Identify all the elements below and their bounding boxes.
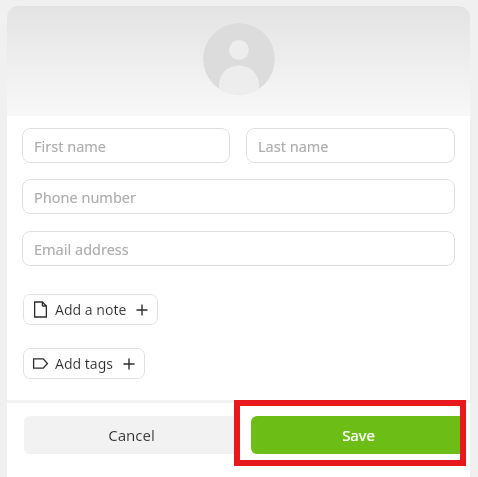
button[interactable]: Phone number (22, 179, 455, 214)
staticText: Add a note (55, 300, 127, 319)
button[interactable]: Add a note (23, 294, 158, 325)
button[interactable]: Add tags (23, 348, 145, 379)
button[interactable]: Save (251, 416, 466, 454)
staticText: Save (342, 425, 375, 445)
button[interactable]: Cancel (24, 416, 239, 454)
staticText: Phone number (34, 187, 136, 207)
button[interactable]: Add photo (203, 23, 275, 95)
staticText: First name (34, 136, 107, 156)
button[interactable]: Last name (246, 128, 455, 163)
staticText: Cancel (108, 425, 155, 445)
staticText: Last name (258, 136, 329, 156)
button[interactable]: First name (22, 128, 230, 163)
staticText: Email address (34, 239, 129, 259)
staticText: Add tags (55, 354, 114, 373)
button[interactable]: Email address (22, 231, 455, 266)
